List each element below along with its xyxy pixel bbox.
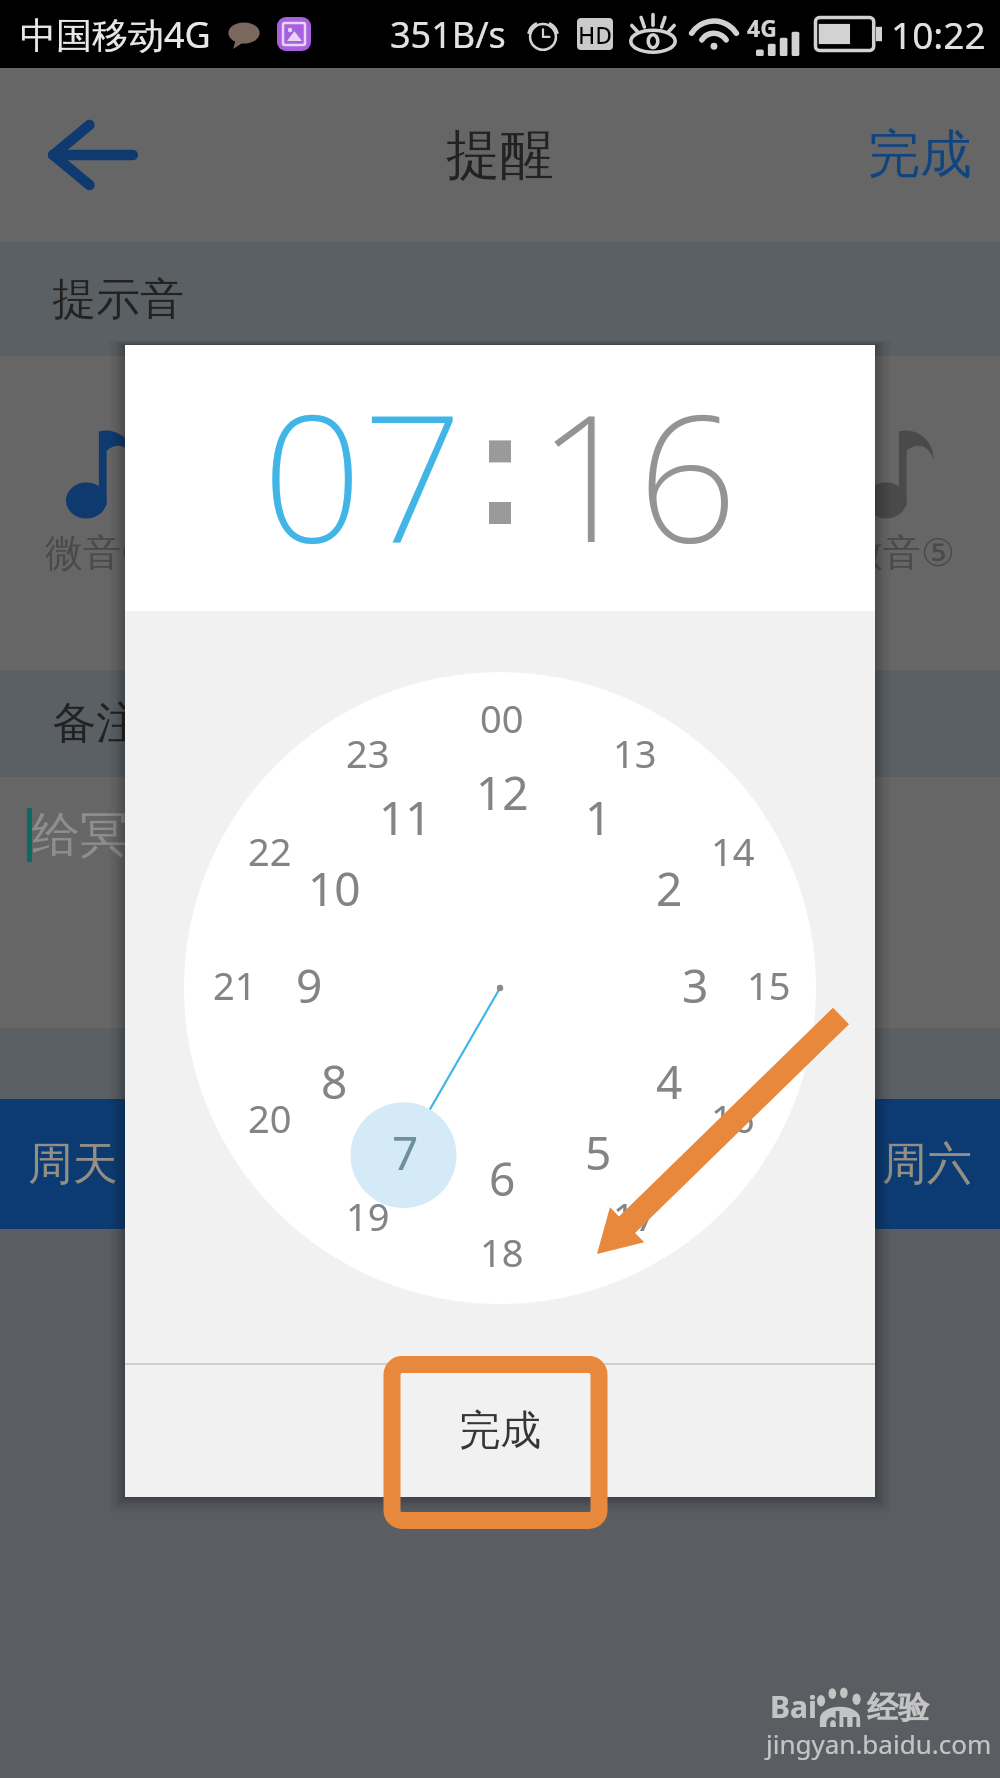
- staticText: 周六: [882, 1136, 972, 1193]
- staticText: 微音⑤: [845, 529, 956, 577]
- staticText: 微音④: [645, 529, 756, 577]
- button[interactable]: 完成: [387, 1379, 613, 1483]
- staticText: 19: [346, 1190, 390, 1242]
- staticText: 11: [379, 786, 432, 849]
- staticText: 完成: [868, 122, 972, 188]
- staticText: 10:22: [891, 9, 986, 59]
- button[interactable]: 微音②: [245, 421, 356, 577]
- staticText: 微音①: [45, 529, 156, 577]
- staticText: 16: [711, 1092, 755, 1144]
- button[interactable]: 微音④: [645, 421, 756, 577]
- staticText: 给冥想: [32, 805, 176, 865]
- staticText: 07: [262, 354, 463, 594]
- staticText: jingyan.baidu.com: [766, 1726, 992, 1761]
- staticText: 18: [480, 1226, 524, 1278]
- button[interactable]: 微音①: [45, 421, 156, 577]
- staticText: 10: [308, 857, 361, 920]
- staticText: 6: [489, 1147, 516, 1210]
- staticText: 14: [711, 825, 755, 877]
- staticText: 5: [585, 1121, 612, 1184]
- staticText: 22: [248, 825, 292, 877]
- staticText: 8: [321, 1050, 348, 1113]
- staticText: 15: [747, 959, 791, 1011]
- staticText: 351B/s: [390, 10, 506, 59]
- staticText: 经验: [867, 1688, 929, 1727]
- staticText: 20: [248, 1092, 292, 1144]
- staticText: 4G: [747, 12, 777, 43]
- staticText: 17: [613, 1190, 657, 1242]
- button[interactable]: Back: [38, 100, 148, 210]
- staticText: 23: [346, 727, 390, 779]
- button[interactable]: 微音⑤: [845, 421, 956, 577]
- staticText: 1: [585, 786, 612, 849]
- staticText: 3: [682, 954, 709, 1017]
- staticText: 微音②: [245, 529, 356, 577]
- staticText: 备注: [52, 696, 140, 751]
- staticText: 21: [213, 959, 257, 1011]
- staticText: HD: [578, 19, 613, 50]
- button[interactable]: 完成: [850, 104, 1000, 206]
- staticText: 完成: [459, 1405, 541, 1457]
- button[interactable]: 微音③: [445, 421, 556, 577]
- staticText: du: [825, 1704, 859, 1739]
- staticText: 12: [476, 761, 529, 824]
- staticText: 中国移动4G: [20, 10, 211, 59]
- staticText: 7: [392, 1121, 419, 1184]
- staticText: 提示音: [52, 272, 184, 327]
- staticText: 00: [480, 692, 524, 744]
- staticText: Bai: [770, 1686, 817, 1727]
- staticText: 9: [296, 954, 323, 1017]
- staticText: 13: [613, 727, 657, 779]
- staticText: 周天: [28, 1136, 118, 1193]
- staticText: 2: [656, 857, 683, 920]
- staticText: 4: [656, 1050, 683, 1113]
- staticText: 16: [537, 354, 738, 594]
- staticText: 提醒: [446, 121, 554, 189]
